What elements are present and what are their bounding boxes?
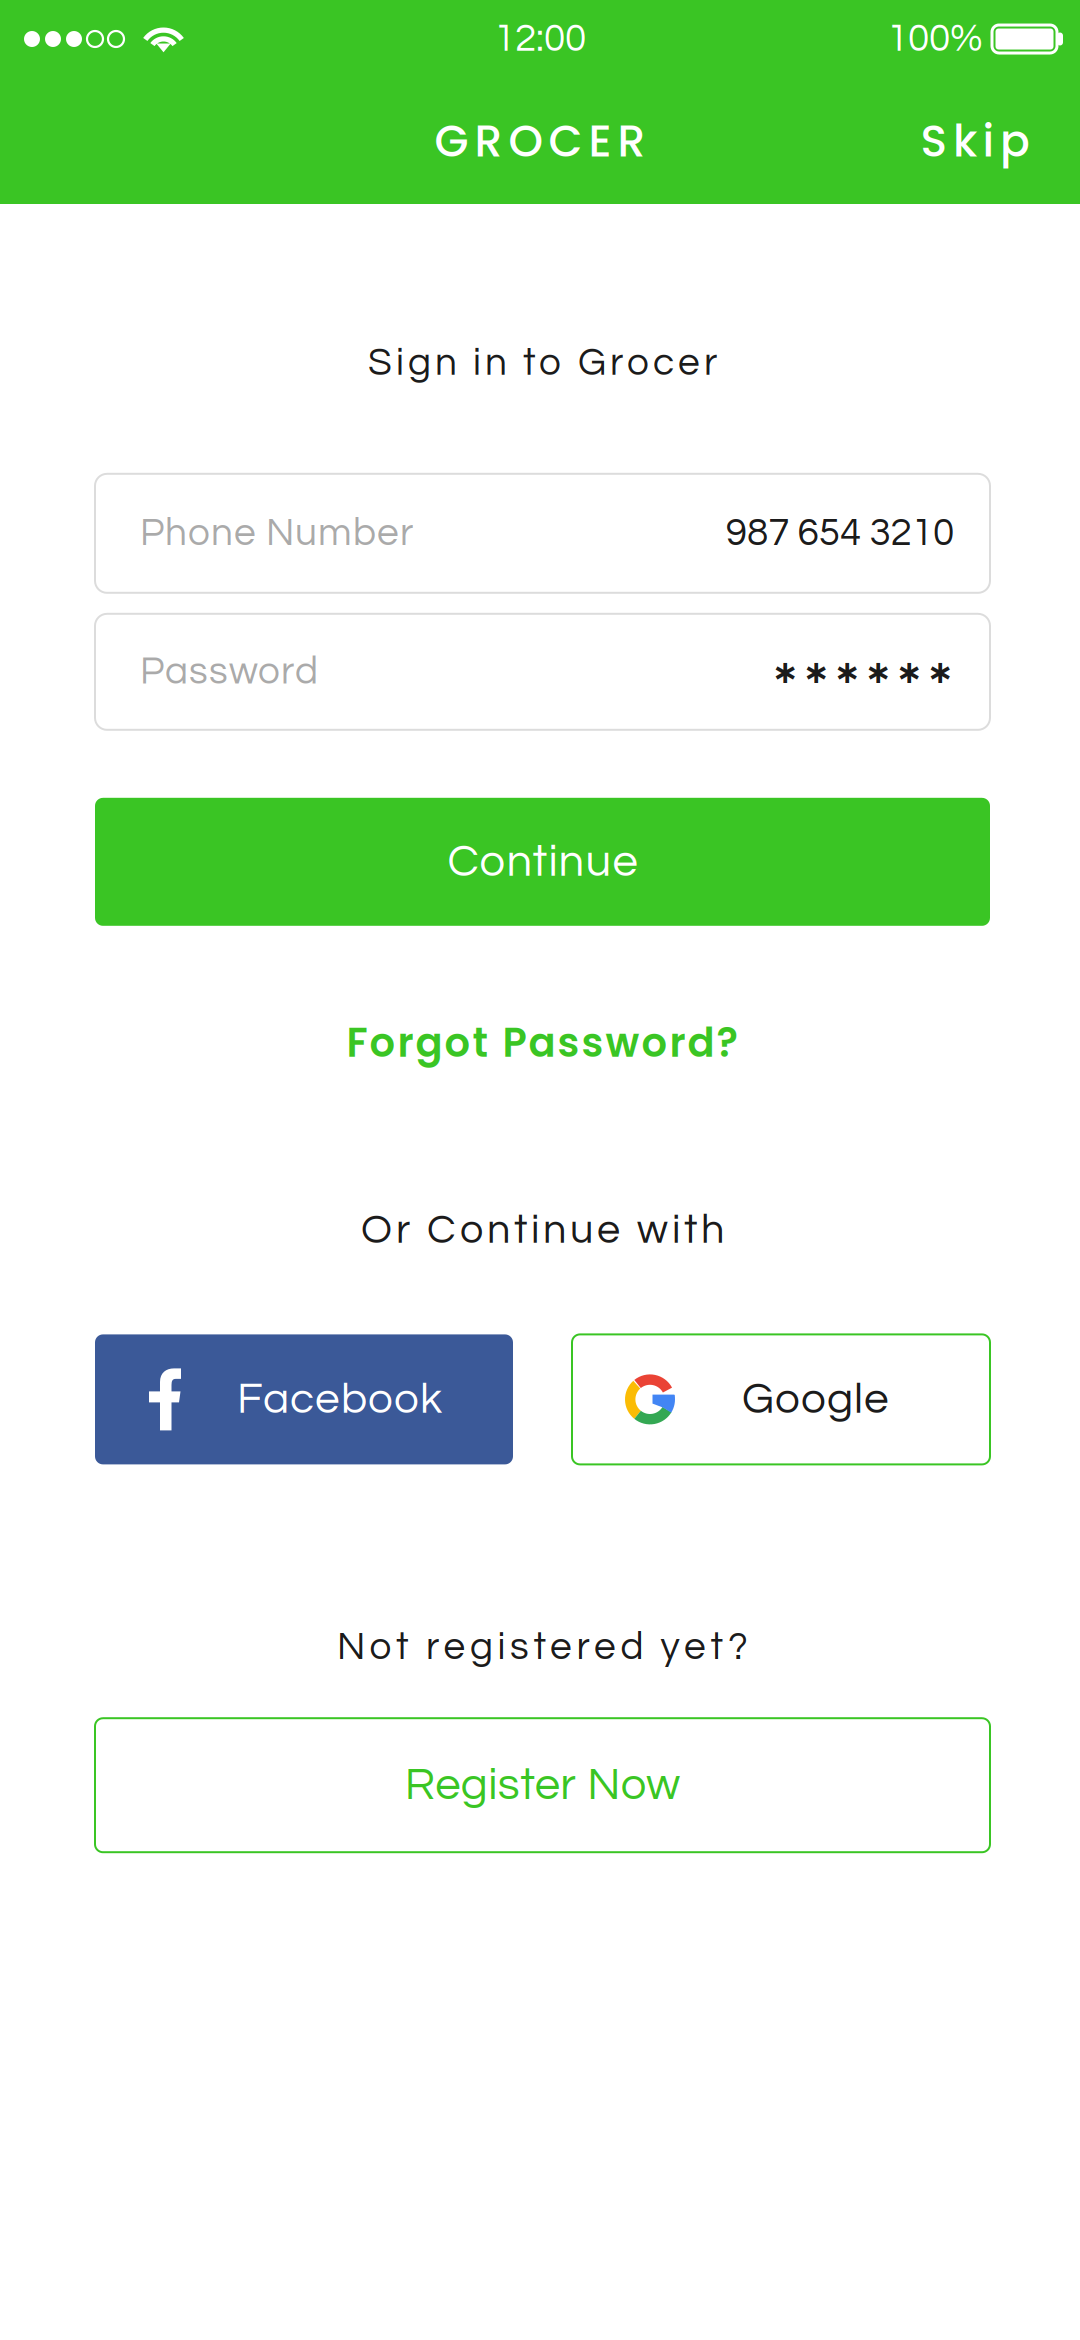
staticText: 100% xyxy=(887,19,983,59)
staticText: Register Now xyxy=(405,1762,680,1809)
staticText: Or Continue with xyxy=(361,1209,724,1251)
staticText: 12:00 xyxy=(494,19,586,59)
button[interactable]: Skip xyxy=(898,90,1052,192)
staticText: Not registered yet? xyxy=(337,1627,748,1667)
staticText: Password xyxy=(140,652,318,692)
staticText: Google xyxy=(742,1377,889,1422)
staticText: Facebook xyxy=(237,1377,442,1422)
button[interactable]: Continue xyxy=(95,798,990,926)
staticText: ∗∗∗∗∗∗ xyxy=(772,653,954,690)
button[interactable]: Google xyxy=(572,1334,990,1464)
staticText: GROCER xyxy=(434,110,645,172)
button[interactable]: Register Now xyxy=(95,1718,990,1852)
staticText: 987 654 3210 xyxy=(726,513,954,553)
staticText: Sign in to Grocer xyxy=(368,343,717,383)
staticText: Skip xyxy=(920,110,1030,172)
button[interactable]: Forgot Password? xyxy=(346,1015,738,1071)
button[interactable]: Facebook xyxy=(95,1334,513,1464)
staticText: Phone Number xyxy=(140,513,413,553)
staticText: Forgot Password? xyxy=(346,1015,738,1071)
staticText: Continue xyxy=(447,838,637,885)
